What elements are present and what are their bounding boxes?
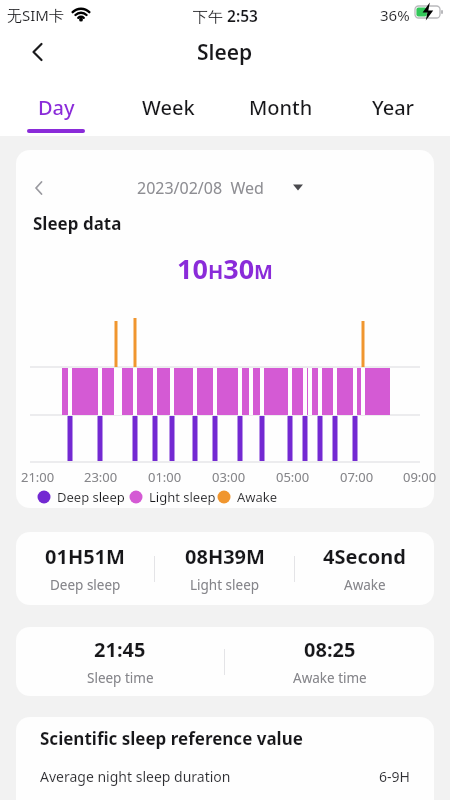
staticText: Year: [372, 94, 415, 121]
button[interactable]: Week: [112, 88, 224, 126]
staticText: 4Second: [323, 543, 406, 570]
staticText: Week: [142, 94, 195, 121]
staticText: Deep sleep: [50, 576, 121, 594]
button[interactable]: [24, 38, 52, 66]
staticText: Awake: [344, 576, 386, 594]
staticText: Scientific sleep reference value: [40, 727, 303, 749]
staticText: Day: [38, 94, 75, 121]
staticText: 05:00: [276, 468, 310, 486]
staticText: Average night sleep duration: [40, 767, 231, 786]
staticText: Sleep: [197, 38, 253, 67]
staticText: 10H30M: [177, 250, 273, 286]
staticText: 08:25: [304, 636, 356, 663]
staticText: 08H39M: [185, 543, 265, 570]
staticText: 21:00: [21, 468, 55, 486]
staticText: Light sleep: [149, 488, 216, 506]
button[interactable]: 08H39M: [155, 532, 294, 605]
staticText: Deep sleep: [57, 488, 125, 506]
button[interactable]: [26, 174, 52, 202]
staticText: Awake: [237, 488, 278, 506]
staticText: 09:00: [403, 468, 437, 486]
staticText: 03:00: [212, 468, 246, 486]
staticText: 01:00: [148, 468, 182, 486]
button[interactable]: 08:25: [225, 627, 434, 696]
staticText: Light sleep: [190, 576, 260, 594]
staticText: Awake time: [293, 669, 367, 687]
staticText: 36%: [380, 5, 410, 25]
button[interactable]: 01H51M: [16, 532, 154, 605]
staticText: 21:45: [94, 636, 146, 663]
button[interactable]: 4Second: [295, 532, 434, 605]
staticText: 2023/02/08 Wed: [137, 177, 264, 199]
staticText: 下午 2:53: [193, 5, 258, 26]
button[interactable]: 21:45: [16, 627, 224, 696]
staticText: Sleep data: [33, 212, 122, 235]
button[interactable]: Day: [0, 88, 112, 126]
staticText: 6-9H: [379, 767, 410, 786]
staticText: 23:00: [84, 468, 118, 486]
button[interactable]: 2023/02/08 Wed: [75, 174, 325, 202]
staticText: Month: [249, 94, 313, 121]
staticText: 无SIM卡: [7, 5, 64, 25]
staticText: 01H51M: [45, 543, 125, 570]
staticText: 07:00: [340, 468, 374, 486]
button[interactable]: Month: [224, 88, 337, 126]
staticText: Sleep time: [87, 669, 154, 687]
button[interactable]: Year: [337, 88, 450, 126]
